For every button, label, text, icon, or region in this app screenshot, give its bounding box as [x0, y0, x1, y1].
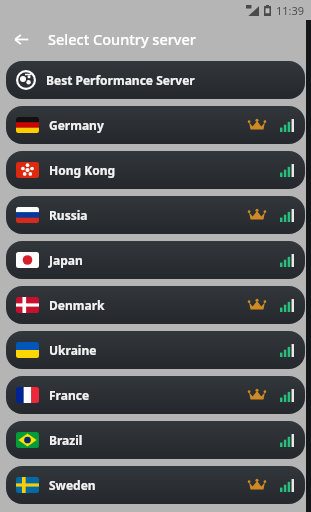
button[interactable]: Denmark	[6, 286, 305, 324]
staticText: Sweden	[49, 477, 96, 493]
staticText: Russia	[49, 207, 88, 223]
staticText: Hong Kong	[49, 162, 116, 178]
button[interactable]: Hong Kong	[6, 151, 305, 189]
staticText: Select Country server	[48, 29, 196, 49]
staticText: Denmark	[49, 297, 105, 313]
button[interactable]: Brazil	[6, 421, 305, 459]
staticText: Germany	[49, 117, 104, 133]
staticText: Brazil	[49, 432, 83, 448]
staticText: Best Performance Server	[46, 72, 195, 88]
button[interactable]: Japan	[6, 241, 305, 279]
button[interactable]: Back	[8, 26, 34, 52]
button[interactable]: Sweden	[6, 466, 305, 504]
button[interactable]: France	[6, 376, 305, 414]
button[interactable]: Russia	[6, 196, 305, 234]
button[interactable]: Germany	[6, 106, 305, 144]
staticText: France	[49, 387, 90, 403]
button[interactable]: Ukraine	[6, 331, 305, 369]
staticText: Ukraine	[49, 342, 97, 358]
button[interactable]: Best Performance Server	[6, 61, 305, 99]
staticText: Japan	[49, 252, 83, 268]
staticText: 11:39	[276, 3, 305, 18]
